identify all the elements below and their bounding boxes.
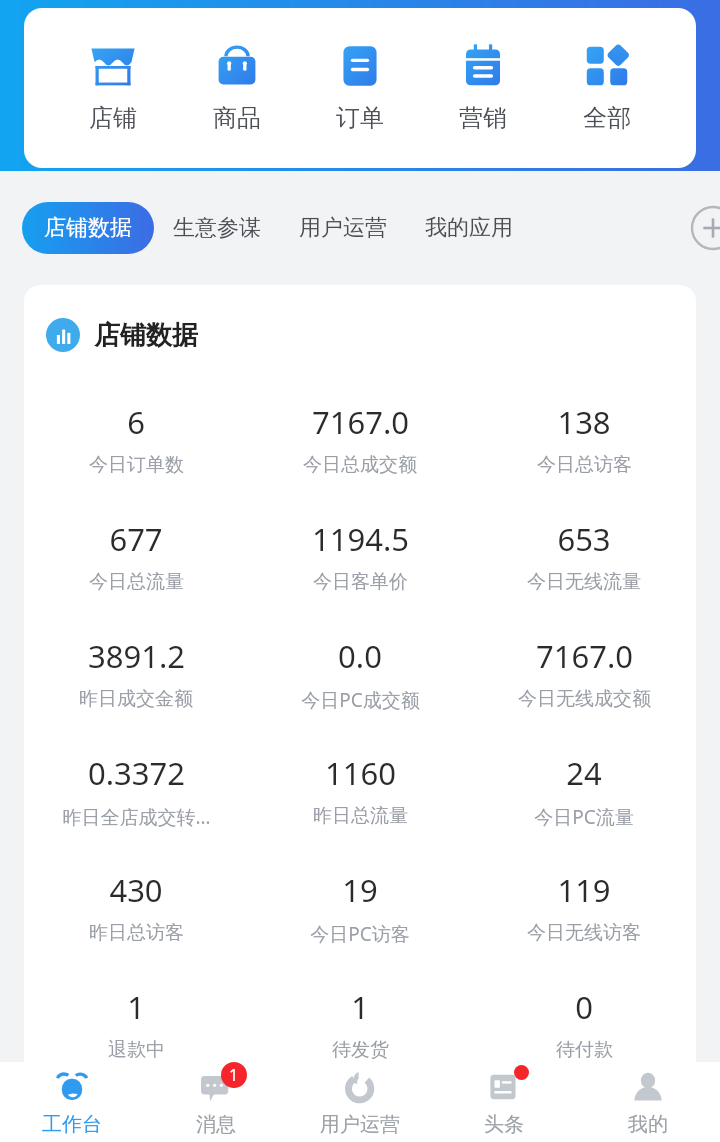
button[interactable]: 商品	[203, 37, 271, 139]
button[interactable]: 138	[472, 385, 696, 502]
staticText: 生意参谋	[173, 214, 261, 242]
staticText: 待发货	[332, 1038, 389, 1062]
staticText: 0.0	[338, 635, 382, 677]
button[interactable]: 用户运营	[280, 202, 406, 254]
staticText: 3891.2	[88, 635, 185, 677]
button[interactable]: 7167.0	[472, 619, 696, 736]
staticText: 1	[351, 986, 369, 1028]
staticText: 用户运营	[299, 214, 387, 242]
staticText: 24	[566, 752, 602, 794]
staticText: 昨日总访客	[89, 921, 184, 945]
staticText: 138	[557, 401, 611, 443]
staticText: 1194.5	[312, 518, 409, 560]
staticText: 头条	[484, 1112, 524, 1137]
button[interactable]: 全部	[573, 37, 641, 139]
staticText: 商品	[213, 103, 261, 133]
staticText: 店铺数据	[44, 214, 132, 242]
staticText: 我的应用	[425, 214, 513, 242]
button[interactable]: 19	[248, 853, 472, 970]
staticText: 退款中	[108, 1038, 165, 1062]
staticText: 订单	[336, 103, 384, 133]
staticText: 今日PC流量	[534, 804, 634, 830]
button[interactable]: 1	[24, 970, 248, 1075]
staticText: 今日总流量	[89, 570, 184, 594]
button[interactable]: 430	[24, 853, 248, 970]
button[interactable]: 营销	[449, 37, 517, 139]
button[interactable]: Add	[690, 205, 720, 251]
button[interactable]: 0.0	[248, 619, 472, 736]
button[interactable]: 653	[472, 502, 696, 619]
button[interactable]: 7167.0	[248, 385, 472, 502]
button[interactable]: 店铺数据	[22, 202, 154, 254]
staticText: 1160	[325, 752, 396, 794]
button[interactable]: 店铺数据	[24, 285, 696, 385]
button[interactable]: 0.3372	[24, 736, 248, 853]
button[interactable]: 我的	[576, 1062, 720, 1142]
button[interactable]: 0	[472, 970, 696, 1075]
staticText: 昨日总流量	[313, 804, 408, 828]
button[interactable]: 店铺	[79, 37, 147, 139]
staticText: 店铺	[89, 103, 137, 133]
staticText: 今日总成交额	[303, 453, 417, 477]
button[interactable]: 1160	[248, 736, 472, 853]
button[interactable]: 3891.2	[24, 619, 248, 736]
staticText: 店铺数据	[94, 319, 198, 352]
button[interactable]: 119	[472, 853, 696, 970]
staticText: 0	[575, 986, 593, 1028]
staticText: 昨日成交金额	[79, 687, 193, 711]
staticText: 7167.0	[536, 635, 633, 677]
staticText: 消息	[196, 1112, 236, 1137]
button[interactable]: 1	[144, 1062, 288, 1142]
staticText: 653	[557, 518, 611, 560]
staticText: 今日无线访客	[527, 921, 641, 945]
staticText: 待付款	[556, 1038, 613, 1062]
staticText: 用户运营	[320, 1112, 400, 1137]
staticText: 今日总访客	[537, 453, 632, 477]
staticText: 营销	[459, 103, 507, 133]
button[interactable]: 1194.5	[248, 502, 472, 619]
staticText: 1	[229, 1064, 239, 1086]
staticText: 工作台	[42, 1112, 102, 1137]
staticText: 全部	[583, 103, 631, 133]
staticText: 119	[557, 869, 611, 911]
staticText: 今日PC访客	[310, 921, 410, 947]
button[interactable]: 头条	[432, 1062, 576, 1142]
staticText: 7167.0	[312, 401, 409, 443]
button[interactable]: 1	[248, 970, 472, 1075]
staticText: 今日订单数	[89, 453, 184, 477]
button[interactable]: 677	[24, 502, 248, 619]
staticText: 1	[127, 986, 145, 1028]
staticText: 0.3372	[88, 752, 185, 794]
staticText: 我的	[628, 1112, 668, 1137]
staticText: 今日无线流量	[527, 570, 641, 594]
staticText: 今日无线成交额	[518, 687, 651, 711]
staticText: 6	[127, 401, 145, 443]
staticText: 今日客单价	[313, 570, 408, 594]
button[interactable]: 生意参谋	[154, 202, 280, 254]
staticText: 677	[109, 518, 163, 560]
button[interactable]: 我的应用	[406, 202, 532, 254]
staticText: 今日PC成交额	[301, 687, 420, 713]
staticText: 19	[342, 869, 378, 911]
staticText: 昨日全店成交转…	[62, 804, 211, 830]
button[interactable]: 工作台	[0, 1062, 144, 1142]
staticText: 430	[109, 869, 163, 911]
button[interactable]: 订单	[326, 37, 394, 139]
button[interactable]: 24	[472, 736, 696, 853]
button[interactable]: 用户运营	[288, 1062, 432, 1142]
button[interactable]: 6	[24, 385, 248, 502]
